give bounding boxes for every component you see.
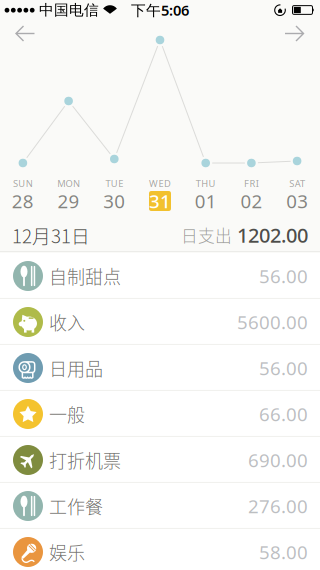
staticText: 一般 — [49, 401, 85, 427]
staticText: 30 — [103, 189, 125, 213]
staticText: 打折机票 — [49, 447, 121, 473]
staticText: 56.00 — [259, 264, 308, 288]
staticText: 03 — [286, 189, 308, 213]
staticText: 日用品 — [49, 355, 103, 381]
staticText: FRI — [244, 177, 259, 190]
button[interactable]: THU 01 — [183, 172, 229, 218]
staticText: 28 — [12, 189, 34, 213]
staticText: SUN — [13, 177, 33, 190]
button[interactable]: 娱乐 — [0, 529, 320, 570]
button[interactable]: 打折机票 — [0, 437, 320, 483]
staticText: SAT — [289, 177, 305, 190]
button[interactable]: Next week — [285, 20, 320, 42]
staticText: 56.00 — [259, 356, 308, 380]
staticText: 12月31日 — [12, 221, 90, 248]
staticText: 娱乐 — [49, 539, 85, 565]
staticText: WED — [149, 177, 171, 190]
button[interactable]: SAT 03 — [274, 172, 320, 218]
staticText: MON — [57, 177, 80, 190]
button[interactable]: Previous week — [0, 20, 35, 42]
button[interactable]: SUN 28 — [0, 172, 46, 218]
staticText: 5600.00 — [237, 310, 308, 334]
staticText: 31 — [149, 189, 171, 213]
button[interactable]: MON 29 — [46, 172, 91, 218]
staticText: 66.00 — [259, 402, 308, 426]
staticText: 中国电信 — [39, 1, 99, 19]
button[interactable]: TUE 30 — [91, 172, 137, 218]
button[interactable]: 日用品 — [0, 345, 320, 391]
button[interactable]: 工作餐 — [0, 483, 320, 529]
staticText: 276.00 — [248, 494, 308, 518]
staticText: 自制甜点 — [49, 263, 121, 289]
staticText: 收入 — [49, 309, 85, 335]
button[interactable]: 自制甜点 — [0, 253, 320, 299]
staticText: 02 — [240, 189, 262, 213]
button[interactable]: WED 31 — [137, 172, 183, 218]
staticText: THU — [196, 177, 216, 190]
staticText: 58.00 — [259, 540, 308, 564]
staticText: 日支出 — [181, 223, 232, 247]
staticText: 690.00 — [248, 448, 308, 472]
button[interactable]: 一般 — [0, 391, 320, 437]
staticText: 1202.00 — [237, 222, 308, 248]
staticText: 01 — [195, 189, 217, 213]
button[interactable]: FRI 02 — [229, 172, 274, 218]
staticText: TUE — [105, 177, 123, 190]
staticText: 29 — [58, 189, 80, 213]
staticText: 工作餐 — [49, 493, 103, 519]
staticText: 下午5:06 — [131, 0, 189, 20]
button[interactable]: 收入 — [0, 299, 320, 345]
